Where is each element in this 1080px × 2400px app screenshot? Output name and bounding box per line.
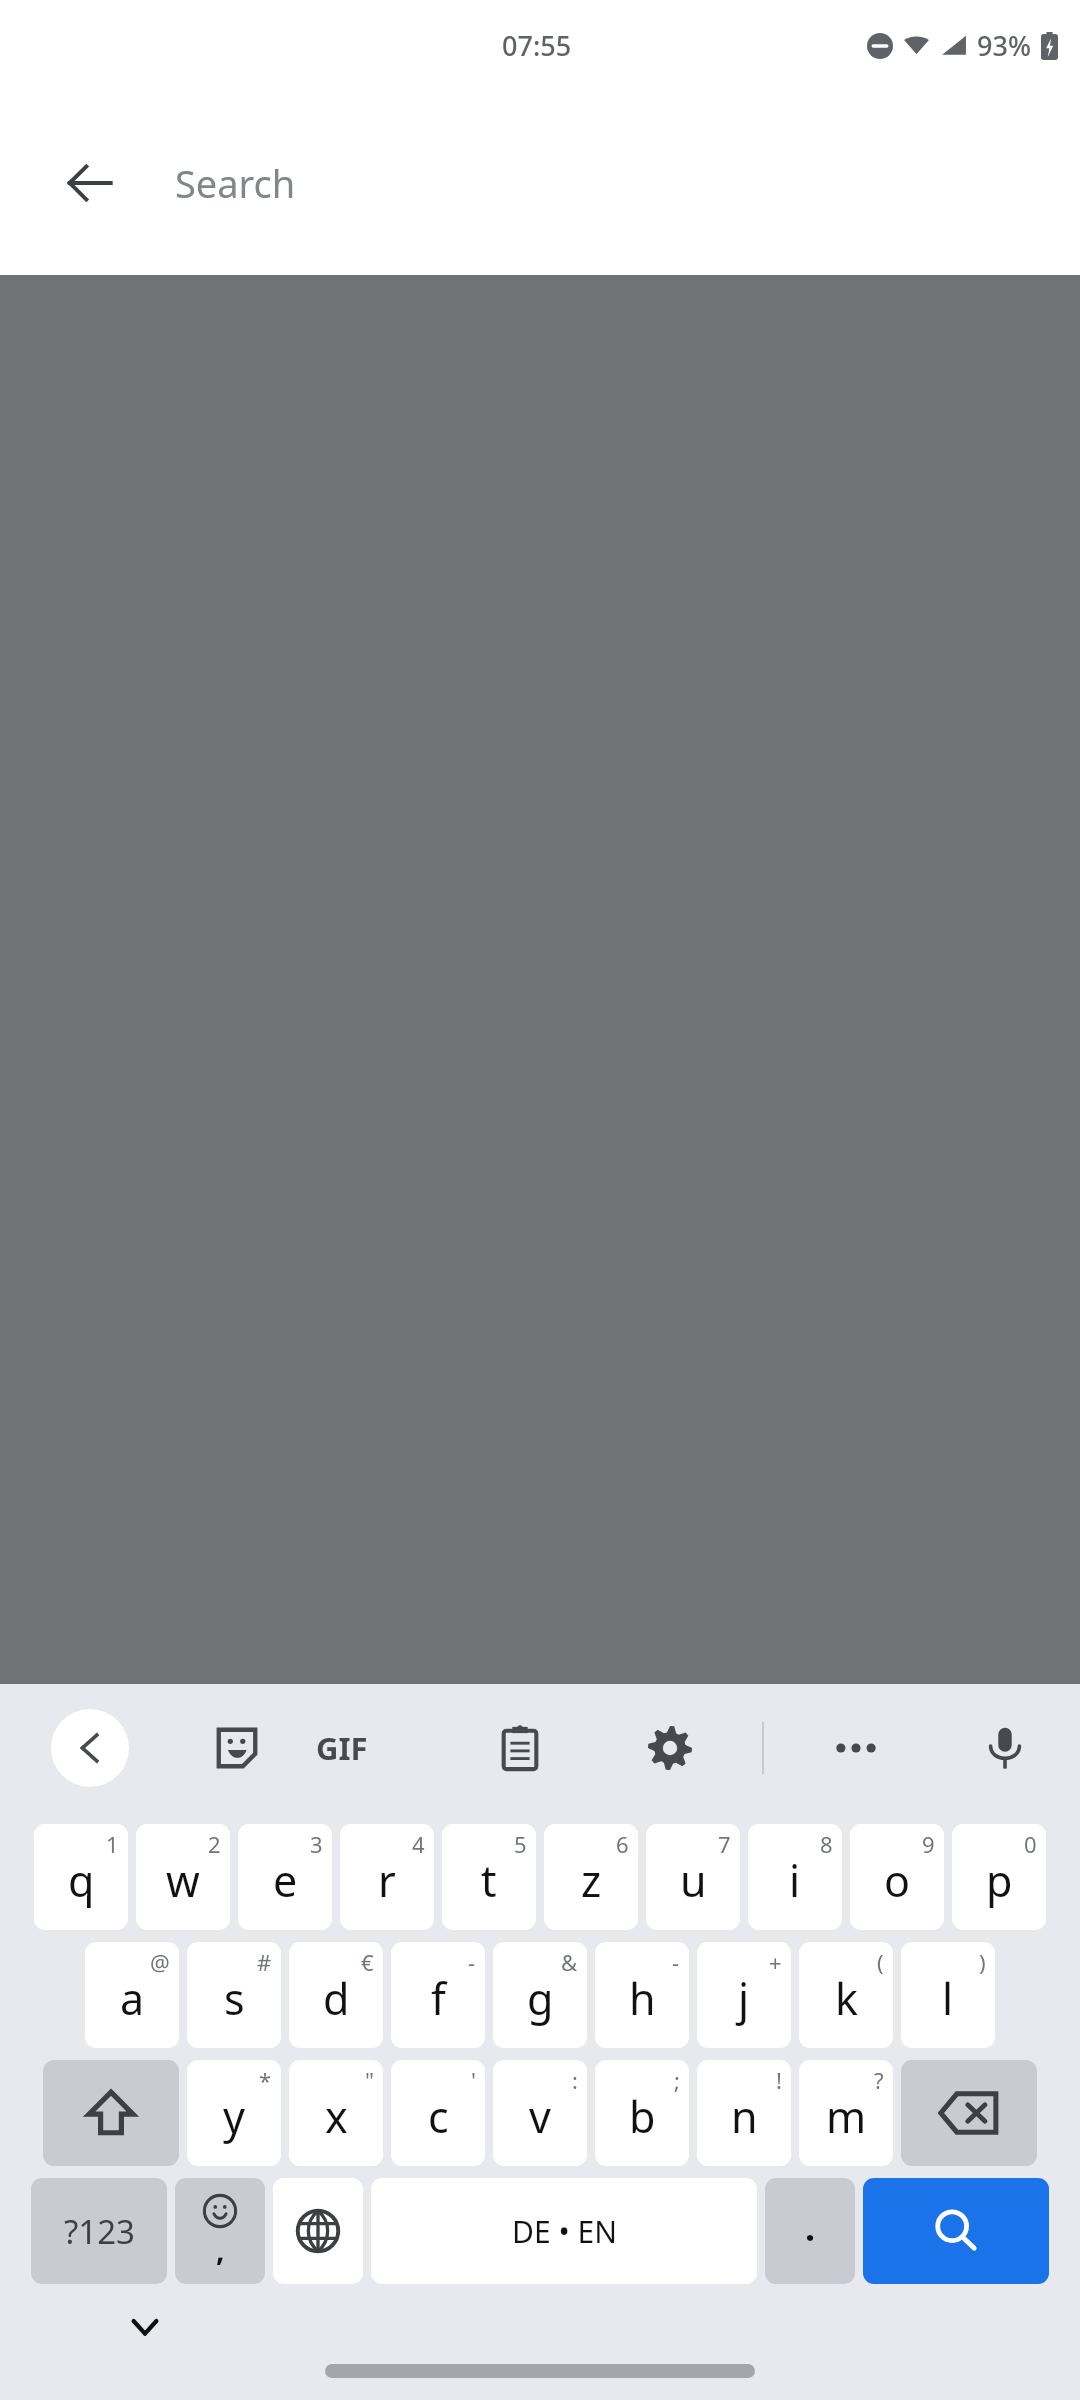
staticText: s — [224, 1969, 245, 2028]
staticText: ; — [674, 2065, 680, 2095]
staticText: ( — [877, 1947, 884, 1977]
button[interactable]: n — [697, 2060, 791, 2166]
staticText: 8 — [820, 1829, 833, 1859]
button[interactable]: Search — [175, 90, 1060, 275]
staticText: # — [257, 1947, 272, 1977]
staticText: d — [323, 1969, 350, 2028]
button[interactable]: More options — [812, 1704, 900, 1792]
staticText: ' — [471, 2065, 476, 2095]
staticText: 93% — [977, 27, 1031, 64]
button[interactable]: x — [289, 2060, 383, 2166]
staticText: a — [120, 1969, 145, 2028]
staticText: h — [629, 1969, 656, 2028]
button[interactable]: i — [748, 1824, 842, 1930]
staticText: : — [572, 2065, 578, 2095]
staticText: g — [527, 1969, 554, 2028]
staticText: j — [738, 1969, 750, 2028]
staticText: e — [273, 1851, 298, 1910]
button[interactable]: c — [391, 2060, 485, 2166]
button[interactable]: Stickers — [190, 1701, 284, 1795]
staticText: 2 — [208, 1829, 221, 1859]
staticText: € — [361, 1947, 374, 1977]
staticText: 5 — [514, 1829, 527, 1859]
button[interactable]: Settings — [623, 1701, 717, 1795]
staticText: Search — [175, 157, 296, 209]
staticText: & — [561, 1947, 578, 1977]
button[interactable]: d — [289, 1942, 383, 2048]
button[interactable]: e — [238, 1824, 332, 1930]
button[interactable]: Search — [863, 2178, 1049, 2284]
button[interactable]: m — [799, 2060, 893, 2166]
staticText: * — [259, 2065, 272, 2095]
staticText: f — [431, 1969, 446, 2028]
button[interactable]: Clipboard — [473, 1701, 567, 1795]
staticText: 0 — [1024, 1829, 1037, 1859]
staticText: - — [468, 1947, 476, 1977]
staticText: y — [223, 2087, 245, 2146]
staticText: z — [581, 1851, 602, 1910]
staticText: GIF — [316, 1727, 368, 1769]
staticText: + — [769, 1947, 782, 1977]
button[interactable]: Shift — [43, 2060, 179, 2166]
button[interactable]: t — [442, 1824, 536, 1930]
button[interactable]: a — [85, 1942, 179, 2048]
staticText: k — [835, 1969, 858, 2028]
button[interactable]: r — [340, 1824, 434, 1930]
button[interactable]: g — [493, 1942, 587, 2048]
button[interactable]: Previous — [51, 1709, 129, 1787]
button[interactable]: s — [187, 1942, 281, 2048]
staticText: ! — [776, 2065, 782, 2095]
staticText: 9 — [922, 1829, 935, 1859]
button[interactable]: Emoji — [175, 2178, 265, 2284]
button[interactable]: Voice input — [958, 1701, 1052, 1795]
button[interactable]: y — [187, 2060, 281, 2166]
staticText: , — [216, 2229, 225, 2270]
button[interactable]: Backspace — [901, 2060, 1037, 2166]
button[interactable]: f — [391, 1942, 485, 2048]
button[interactable]: o — [850, 1824, 944, 1930]
staticText: 07:55 — [502, 27, 572, 64]
staticText: o — [884, 1851, 911, 1910]
staticText: 3 — [310, 1829, 323, 1859]
button[interactable]: . — [765, 2178, 855, 2284]
staticText: ?123 — [64, 2209, 135, 2254]
staticText: b — [629, 2087, 656, 2146]
button[interactable]: p — [952, 1824, 1046, 1930]
button[interactable]: j — [697, 1942, 791, 2048]
staticText: ? — [874, 2065, 884, 2095]
staticText: c — [428, 2087, 449, 2146]
staticText: 1 — [106, 1829, 119, 1859]
button[interactable]: Change language — [273, 2178, 363, 2284]
button[interactable]: GIF — [295, 1701, 389, 1795]
button[interactable]: z — [544, 1824, 638, 1930]
button[interactable]: b — [595, 2060, 689, 2166]
staticText: . — [805, 2203, 816, 2252]
button[interactable]: DE • EN — [371, 2178, 757, 2284]
button[interactable]: l — [901, 1942, 995, 2048]
staticText: r — [378, 1851, 396, 1910]
button[interactable]: k — [799, 1942, 893, 2048]
button[interactable]: q — [34, 1824, 128, 1930]
staticText: l — [942, 1969, 954, 2028]
staticText: p — [986, 1851, 1013, 1910]
staticText: i — [789, 1851, 801, 1910]
staticText: m — [826, 2087, 867, 2146]
staticText: v — [529, 2087, 551, 2146]
button[interactable]: u — [646, 1824, 740, 1930]
button[interactable]: ?123 — [31, 2178, 167, 2284]
staticText: @ — [150, 1947, 170, 1977]
button[interactable]: Back — [33, 126, 147, 240]
button[interactable]: h — [595, 1942, 689, 2048]
button[interactable]: Hide keyboard — [110, 2292, 180, 2362]
staticText: w — [166, 1851, 200, 1910]
staticText: t — [481, 1851, 497, 1910]
button[interactable]: v — [493, 2060, 587, 2166]
staticText: x — [325, 2087, 348, 2146]
staticText: " — [365, 2065, 374, 2095]
button[interactable]: w — [136, 1824, 230, 1930]
staticText: 4 — [412, 1829, 425, 1859]
staticText: q — [68, 1851, 95, 1910]
staticText: n — [731, 2087, 758, 2146]
staticText: DE • EN — [512, 2211, 617, 2252]
staticText: 7 — [718, 1829, 731, 1859]
